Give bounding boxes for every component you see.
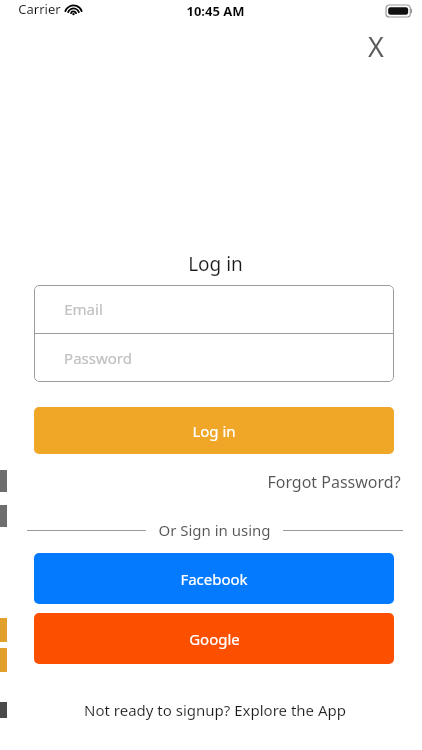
button[interactable]: Forgot Password? [265,466,403,498]
button[interactable]: Email [34,285,394,333]
staticText: X [368,28,384,65]
staticText: Google [189,629,240,649]
staticText: Password [64,348,132,368]
button[interactable]: Log in [34,407,394,454]
button[interactable]: Google [34,613,394,664]
button[interactable]: Close [352,22,400,70]
button[interactable]: Not ready to signup? Explore the App [76,695,354,725]
staticText: Facebook [180,569,248,589]
staticText: 10:45 AM [186,2,245,20]
staticText: Log in [188,251,243,277]
staticText: Email [64,299,103,319]
button[interactable]: Password [34,334,394,382]
staticText: Not ready to signup? Explore the App [84,700,346,720]
staticText: Forgot Password? [267,471,401,493]
staticText: Log in [192,421,236,441]
button[interactable]: Facebook [34,553,394,604]
staticText: Carrier [18,0,61,18]
staticText: Or Sign in using [158,520,271,540]
